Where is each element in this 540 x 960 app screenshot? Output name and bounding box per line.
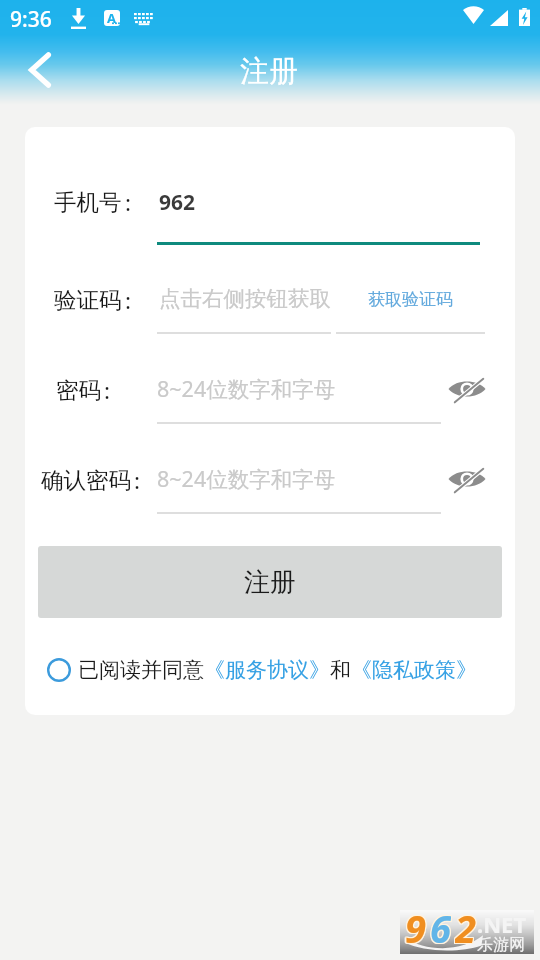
staticText: 9 bbox=[406, 901, 427, 945]
staticText: 962 bbox=[159, 188, 196, 217]
staticText: 验证码 bbox=[54, 286, 122, 314]
button[interactable]: 已阅读并同意 bbox=[47, 650, 477, 690]
staticText: 注册 bbox=[240, 53, 298, 90]
staticText: 6 bbox=[431, 903, 452, 947]
staticText: 6 bbox=[429, 903, 450, 947]
staticText: 8~24位数字和字母 bbox=[157, 464, 336, 493]
staticText: 6 bbox=[430, 901, 451, 945]
staticText: 6 bbox=[431, 901, 452, 945]
staticText: 2 bbox=[456, 903, 477, 947]
staticText: 2 bbox=[454, 903, 475, 947]
staticText: 6 bbox=[431, 902, 452, 946]
staticText: 6 bbox=[430, 902, 451, 946]
staticText: 乐游网 bbox=[477, 935, 525, 955]
staticText: 9 bbox=[404, 903, 425, 947]
staticText: 《隐私政策》 bbox=[351, 657, 477, 683]
staticText: : bbox=[125, 285, 132, 316]
staticText: A bbox=[107, 10, 116, 25]
staticText: 6 bbox=[430, 903, 451, 947]
staticText: : bbox=[134, 465, 141, 496]
staticText: 9 bbox=[405, 903, 426, 947]
staticText: 2 bbox=[456, 902, 477, 946]
staticText: 密码 bbox=[56, 376, 101, 404]
staticText: 获取验证码 bbox=[368, 289, 453, 310]
button[interactable]: Show password bbox=[440, 457, 494, 501]
staticText: 9 bbox=[406, 902, 427, 946]
staticText: 9 bbox=[404, 901, 425, 945]
staticText: .NET bbox=[477, 909, 527, 939]
staticText: 8~24位数字和字母 bbox=[157, 374, 336, 403]
staticText: : bbox=[104, 375, 111, 406]
staticText: 2 bbox=[455, 902, 476, 946]
staticText: 9 bbox=[405, 902, 426, 946]
staticText: 《服务协议》 bbox=[204, 657, 330, 683]
staticText: 2 bbox=[454, 902, 475, 946]
button[interactable]: Show password bbox=[440, 367, 494, 411]
button[interactable]: 注册 bbox=[38, 546, 502, 618]
staticText: 6 bbox=[429, 902, 450, 946]
staticText: 9 bbox=[404, 902, 425, 946]
staticText: 2 bbox=[454, 901, 475, 945]
staticText: 9 bbox=[405, 901, 426, 945]
staticText: 已阅读并同意 bbox=[78, 657, 204, 683]
staticText: 2 bbox=[455, 901, 476, 945]
staticText: 9:36 bbox=[10, 5, 52, 34]
staticText: 注册 bbox=[244, 566, 296, 599]
button[interactable]: Back bbox=[9, 40, 67, 98]
staticText: 点击右侧按钮获取 bbox=[159, 285, 331, 312]
staticText: 6 bbox=[429, 901, 450, 945]
button[interactable]: 获取验证码 bbox=[341, 278, 479, 320]
staticText: : bbox=[125, 187, 132, 218]
staticText: 和 bbox=[330, 657, 351, 683]
staticText: 确认密码 bbox=[41, 466, 131, 494]
staticText: 9 bbox=[406, 903, 427, 947]
staticText: 2 bbox=[455, 903, 476, 947]
staticText: 手机号 bbox=[54, 188, 122, 216]
staticText: 2 bbox=[456, 901, 477, 945]
